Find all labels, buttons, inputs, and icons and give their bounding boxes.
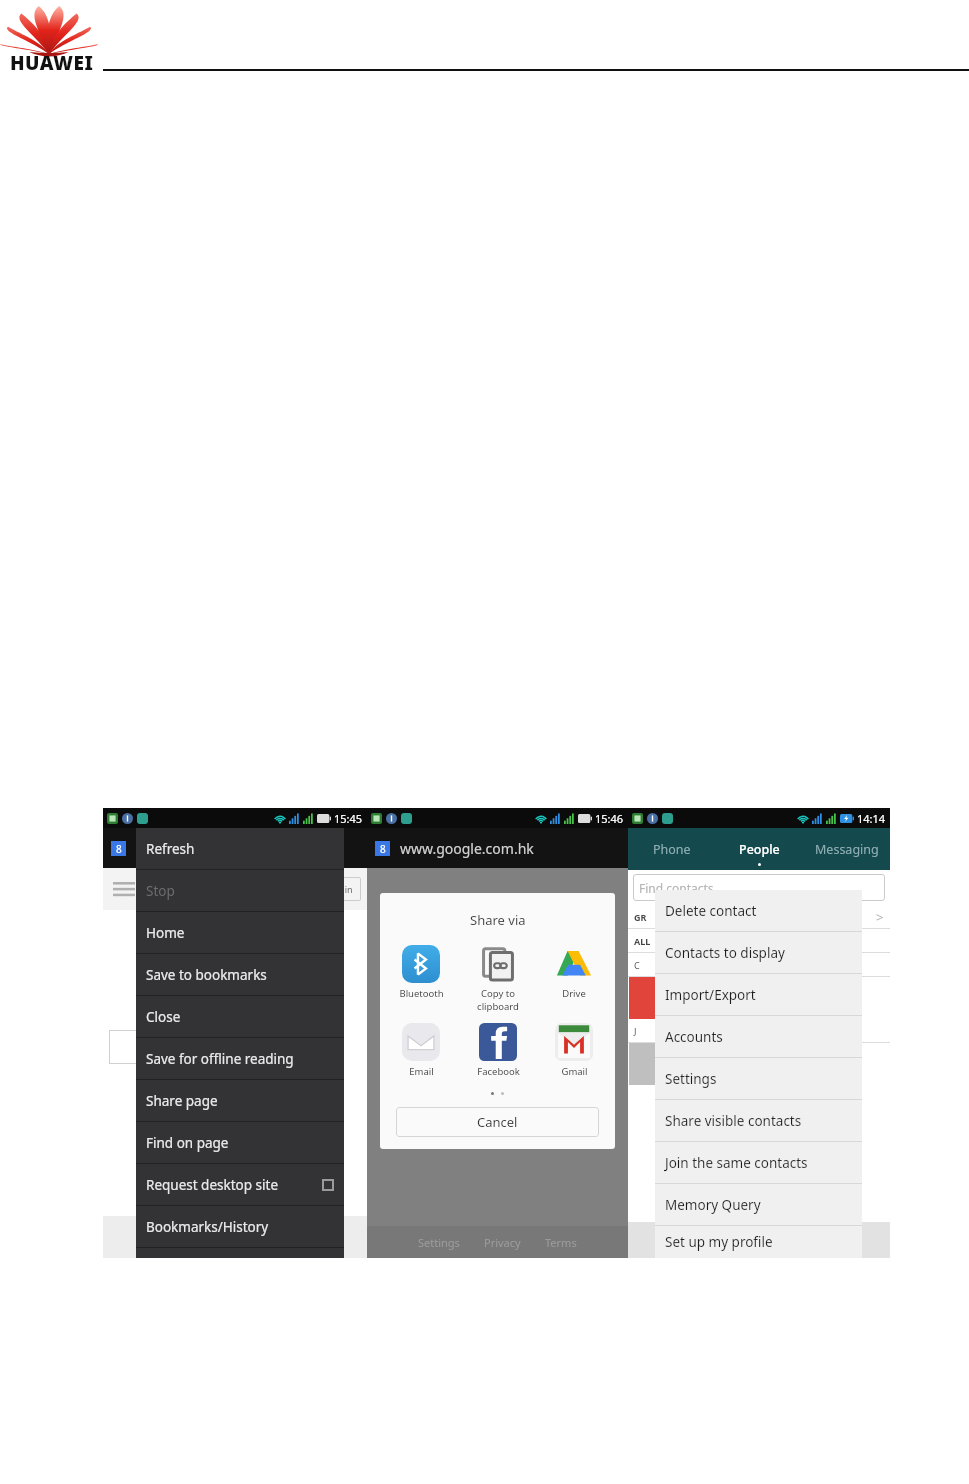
button[interactable]: Bluetooth	[386, 943, 456, 1002]
staticText: Close	[146, 1008, 334, 1026]
button[interactable]: Messaging	[803, 828, 890, 870]
button[interactable]: Terms	[533, 1235, 589, 1250]
staticText: Import/Export	[665, 986, 756, 1004]
staticText: Terms	[545, 1235, 577, 1250]
button[interactable]: Home	[136, 912, 344, 953]
staticText: Share visible contacts	[665, 1112, 802, 1130]
button[interactable]: Cancel	[396, 1107, 599, 1137]
staticText: Request desktop site	[146, 1176, 322, 1194]
staticText: Email	[409, 1065, 434, 1078]
button[interactable]: Close	[136, 996, 344, 1037]
button[interactable]: Save for offline reading	[136, 1038, 344, 1079]
staticText: Settings	[418, 1235, 460, 1250]
staticText: J	[634, 1025, 637, 1037]
button[interactable]: Share visible contacts	[655, 1100, 862, 1141]
staticText: ALL	[634, 935, 651, 947]
staticText: Facebook	[477, 1065, 520, 1078]
staticText: 8	[380, 842, 386, 856]
button[interactable]: GR	[628, 905, 890, 928]
staticText: Privacy	[484, 1235, 521, 1250]
button[interactable]	[628, 1043, 890, 1085]
staticText: Refresh	[146, 840, 334, 858]
button[interactable]: Save to bookmarks	[136, 954, 344, 995]
button[interactable]: Delete contact	[655, 890, 862, 931]
button[interactable]: ALL	[628, 929, 890, 952]
button[interactable]: Copy to clipboard	[463, 943, 533, 1015]
button[interactable]: Settings	[406, 1235, 472, 1250]
button[interactable]: Facebook	[463, 1021, 533, 1080]
staticText: Stop	[146, 882, 334, 900]
staticText: Phone	[653, 841, 691, 858]
button[interactable]: Join the same contacts	[655, 1142, 862, 1183]
button[interactable]: Share page	[136, 1080, 344, 1121]
staticText: C	[634, 959, 640, 971]
staticText: Home	[146, 924, 334, 942]
staticText: Gmail	[561, 1065, 588, 1078]
staticText: Memory Query	[665, 1196, 761, 1214]
button[interactable]: Privacy	[472, 1235, 533, 1250]
staticText: Bookmarks/History	[146, 1218, 334, 1236]
button[interactable]: Gmail	[539, 1021, 609, 1080]
staticText: 15:45	[334, 811, 363, 826]
button[interactable]: Sign in	[315, 877, 361, 901]
button[interactable]: Import/Export	[655, 974, 862, 1015]
staticText: >	[876, 908, 884, 926]
staticText: 14:14	[857, 811, 886, 826]
staticText: Copy to clipboard	[477, 987, 519, 1013]
staticText: Share via	[470, 911, 526, 929]
button[interactable]: C	[628, 953, 890, 976]
staticText: Find on page	[146, 1134, 334, 1152]
staticText: Settings	[665, 1070, 717, 1088]
staticText: Save for offline reading	[146, 1050, 334, 1068]
button[interactable]: Stop	[136, 870, 344, 911]
button[interactable]: Phone	[628, 828, 716, 870]
button[interactable]: Find contacts	[633, 874, 885, 901]
staticText: Drive	[562, 987, 586, 1000]
button[interactable]: People	[716, 828, 803, 870]
staticText: Sign in	[324, 883, 353, 895]
staticText: www.google.com.hk	[400, 839, 534, 858]
staticText: Delete contact	[665, 902, 757, 920]
button[interactable]: Find on page	[136, 1122, 344, 1163]
staticText: Bluetooth	[399, 987, 444, 1000]
staticText: 8	[116, 842, 122, 856]
staticText: Find contacts	[639, 880, 714, 896]
staticText: GR	[634, 911, 647, 923]
staticText: Set up my profile	[665, 1233, 773, 1251]
button[interactable]	[628, 977, 890, 1019]
button[interactable]: Memory Query	[655, 1184, 862, 1225]
button[interactable]: Bookmarks/History	[136, 1206, 344, 1247]
button[interactable]: Settings	[655, 1058, 862, 1099]
button[interactable]: Drive	[539, 943, 609, 1002]
button[interactable]: Accounts	[655, 1016, 862, 1057]
staticText: People	[739, 841, 780, 858]
staticText: HUAWEI	[10, 50, 94, 76]
staticText: Join the same contacts	[665, 1154, 808, 1172]
staticText: Share page	[146, 1092, 334, 1110]
button[interactable]: Request desktop site	[136, 1164, 344, 1205]
staticText: Save to bookmarks	[146, 966, 334, 984]
button[interactable]: Refresh	[136, 828, 344, 869]
staticText: 15:46	[595, 811, 624, 826]
button[interactable]: Contacts to display	[655, 932, 862, 973]
staticText: Accounts	[665, 1028, 723, 1046]
button[interactable]: Set up my profile	[655, 1226, 862, 1258]
staticText: Messaging	[815, 841, 879, 858]
staticText: Contacts to display	[665, 944, 785, 962]
staticText: Cancel	[477, 1113, 518, 1131]
button[interactable]: Email	[386, 1021, 456, 1080]
button[interactable]: J	[628, 1019, 890, 1042]
